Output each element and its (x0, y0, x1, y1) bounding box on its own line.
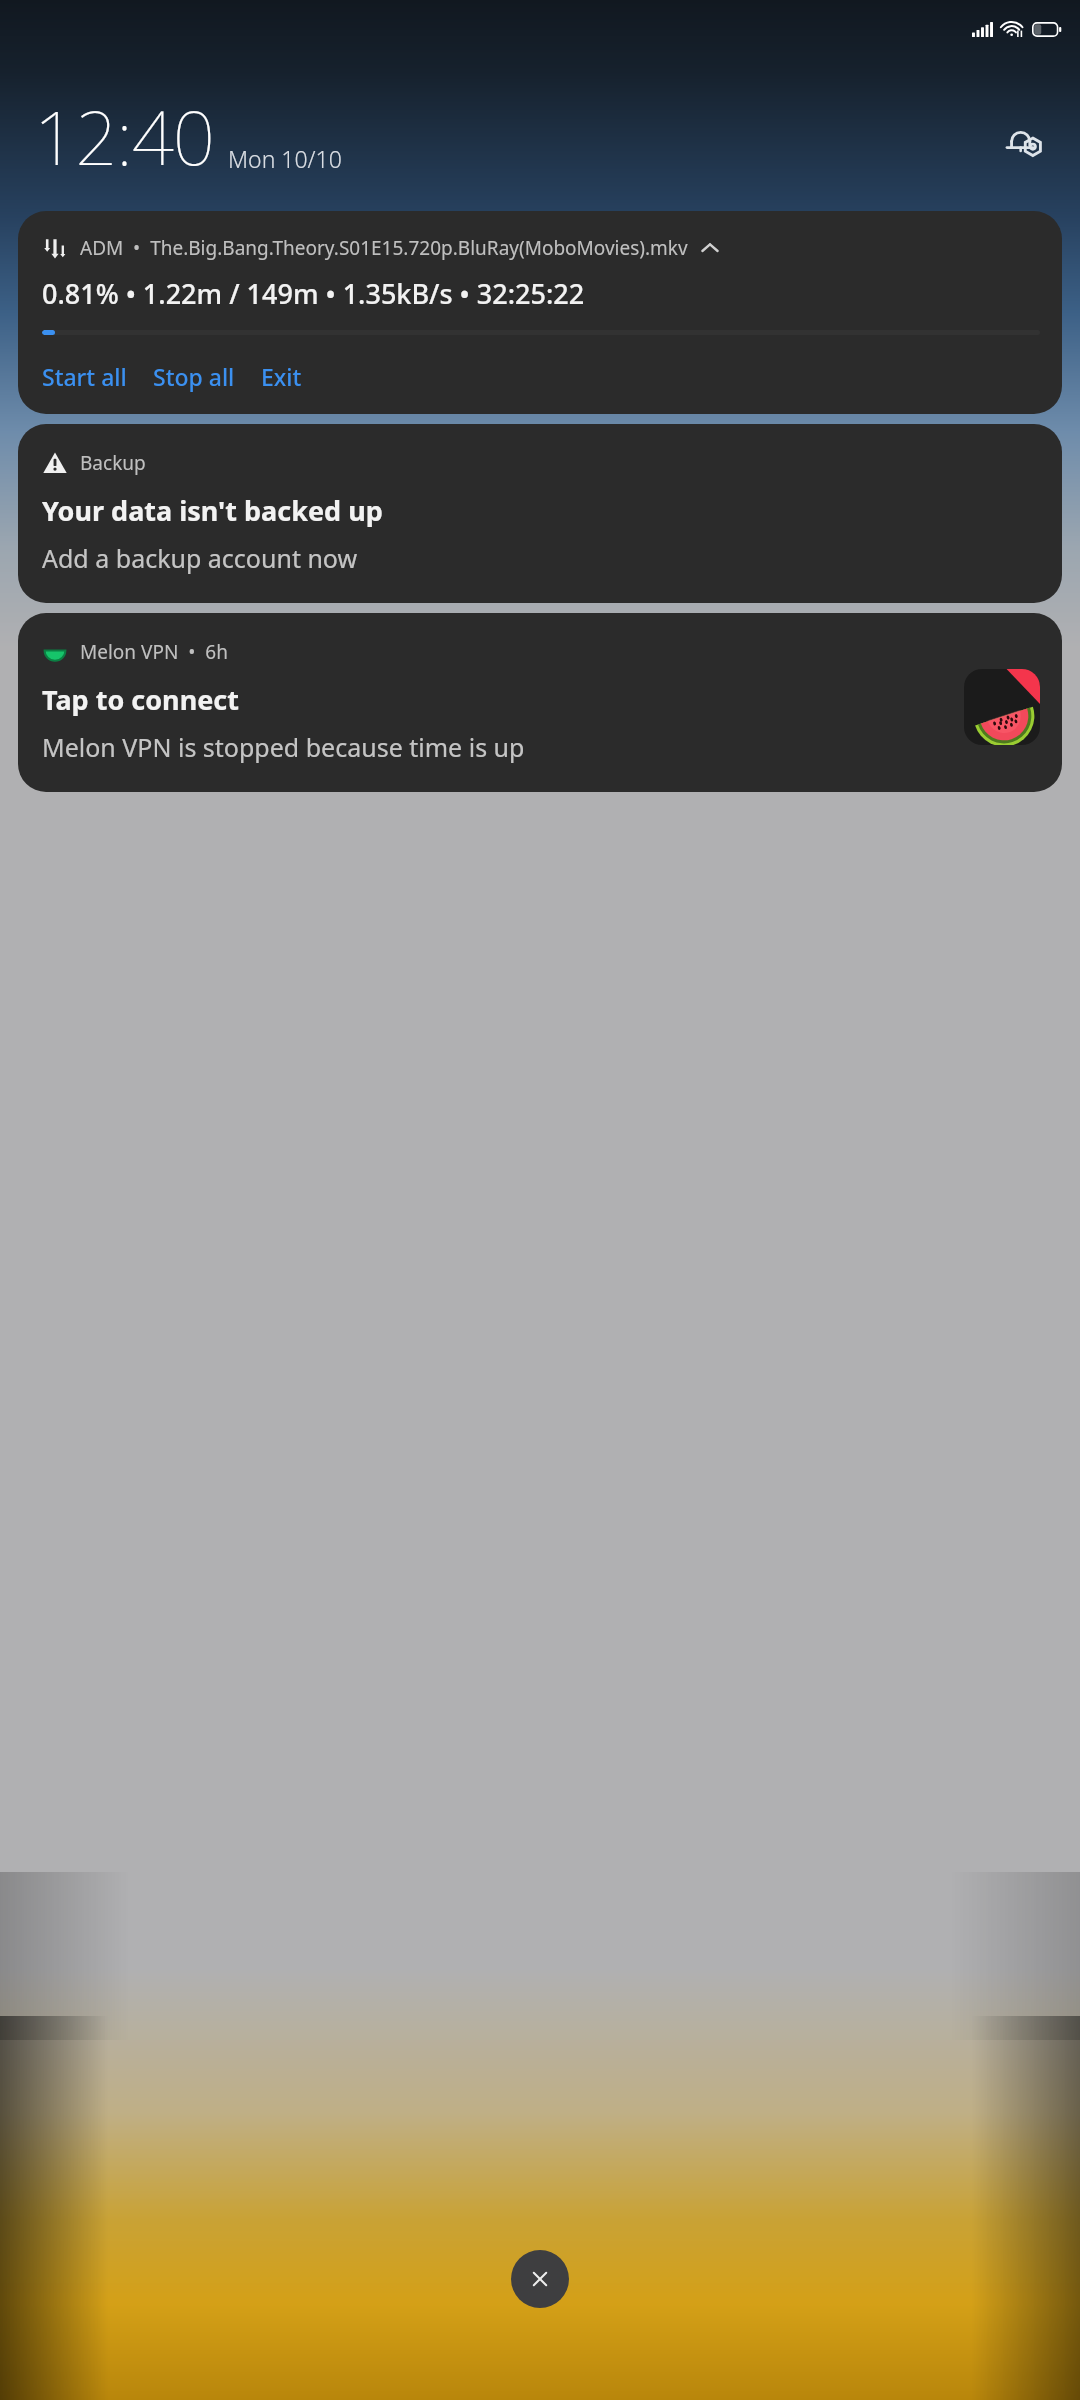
button[interactable]: Notification settings (1000, 117, 1052, 169)
button[interactable]: Melon VPN • 6h (18, 613, 1062, 792)
staticText: Melon VPN is stopped because time is up (42, 730, 525, 764)
button[interactable]: Exit (261, 359, 302, 394)
staticText: Backup (80, 450, 146, 476)
staticText: Mon 10/10 (228, 143, 342, 174)
staticText: 12:40 (34, 86, 214, 187)
staticText: Melon VPN • 6h (80, 639, 228, 665)
button[interactable]: Clear all notifications (511, 2250, 569, 2308)
button[interactable]: Backup (18, 424, 1062, 603)
staticText: ADM • The.Big.Bang.Theory.S01E15.720p.Bl… (80, 235, 688, 261)
button[interactable]: ADM • The.Big.Bang.Theory.S01E15.720p.Bl… (18, 211, 1062, 414)
button[interactable]: Stop all (153, 359, 235, 394)
button[interactable]: Start all (42, 359, 127, 394)
staticText: Tap to connect (42, 681, 239, 718)
staticText: Add a backup account now (42, 541, 358, 575)
staticText: Start all (42, 361, 127, 392)
staticText: Your data isn't backed up (42, 492, 383, 529)
staticText: 0.81% • 1.22m / 149m • 1.35kB/s • 32:25:… (42, 275, 585, 312)
staticText: Exit (261, 361, 302, 392)
staticText: Stop all (153, 361, 235, 392)
